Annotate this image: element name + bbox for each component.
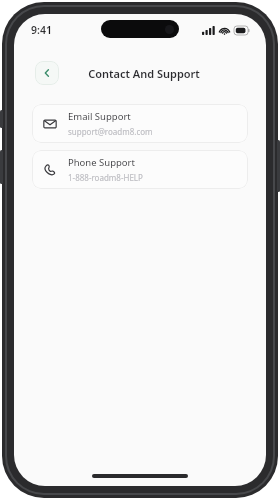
staticText: Email Support	[68, 110, 131, 123]
button[interactable]: Email Support	[32, 104, 248, 143]
staticText: support@roadm8.com	[68, 126, 153, 137]
staticText: Contact And Support	[88, 66, 200, 81]
staticText: Phone Support	[68, 156, 135, 169]
staticText: 1-888-roadm8-HELP	[68, 172, 143, 183]
button[interactable]: Back	[35, 61, 59, 85]
staticText: 9:41	[31, 23, 52, 37]
button[interactable]: Phone Support	[32, 150, 248, 189]
